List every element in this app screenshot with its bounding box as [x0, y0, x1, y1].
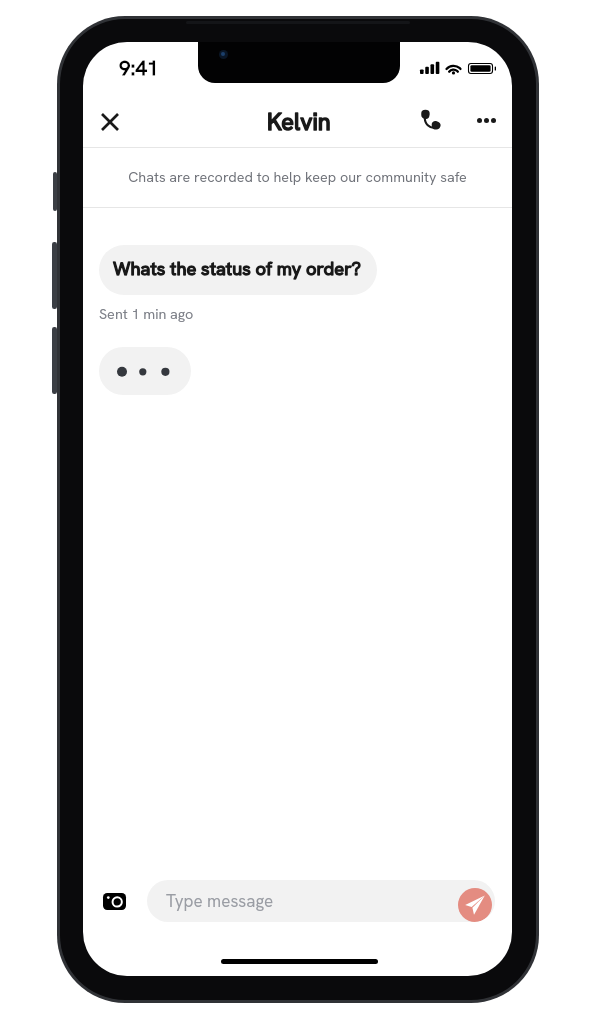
button[interactable]: More options [460, 94, 512, 146]
staticText: Whats the status of my order? [113, 257, 362, 281]
staticText: Type message [166, 890, 274, 912]
staticText: Kelvin [267, 106, 331, 137]
staticText: Sent 1 min ago [99, 305, 194, 324]
button[interactable]: Send [458, 888, 492, 922]
staticText: 9:41 [119, 54, 159, 81]
button[interactable]: Camera [91, 878, 137, 924]
staticText: Whats the status of my order? [113, 257, 362, 281]
button[interactable]: Call [404, 93, 456, 145]
staticText: Kelvin [267, 106, 331, 137]
button[interactable]: Type message [147, 880, 495, 922]
button[interactable]: Whats the status of my order? [99, 245, 377, 295]
staticText: Chats are recorded to help keep our comm… [128, 168, 467, 187]
button[interactable]: Close [84, 96, 136, 148]
